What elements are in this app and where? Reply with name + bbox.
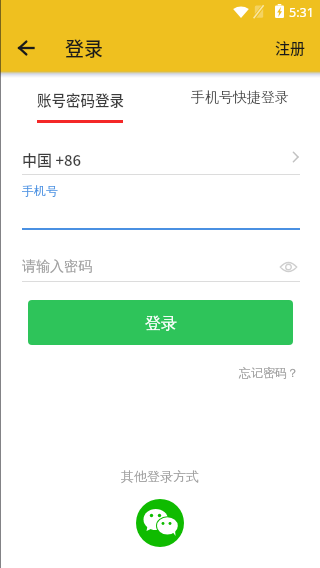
button[interactable]: Back: [8, 30, 44, 66]
button[interactable]: 手机号快捷登录: [160, 72, 320, 122]
staticText: 其他登录方式: [121, 468, 199, 484]
button[interactable]: 中国 +86: [22, 146, 300, 174]
staticText: 登录: [65, 34, 104, 62]
button[interactable]: 注册: [265, 26, 320, 70]
staticText: 忘记密码？: [239, 365, 299, 380]
button[interactable]: Show password: [276, 255, 300, 279]
button[interactable]: 登录: [28, 300, 293, 345]
button[interactable]: WeChat login: [136, 499, 184, 547]
staticText: 手机号: [22, 183, 58, 198]
staticText: 账号密码登录: [37, 89, 124, 110]
staticText: 5:31: [289, 4, 314, 21]
staticText: 请输入密码: [22, 258, 92, 276]
button[interactable]: 忘记密码？: [233, 362, 305, 382]
staticText: 注册: [275, 37, 306, 59]
staticText: 中国 +86: [22, 149, 82, 171]
staticText: 手机号快捷登录: [191, 89, 289, 107]
button[interactable]: 账号密码登录: [0, 72, 160, 122]
staticText: 登录: [145, 314, 177, 334]
